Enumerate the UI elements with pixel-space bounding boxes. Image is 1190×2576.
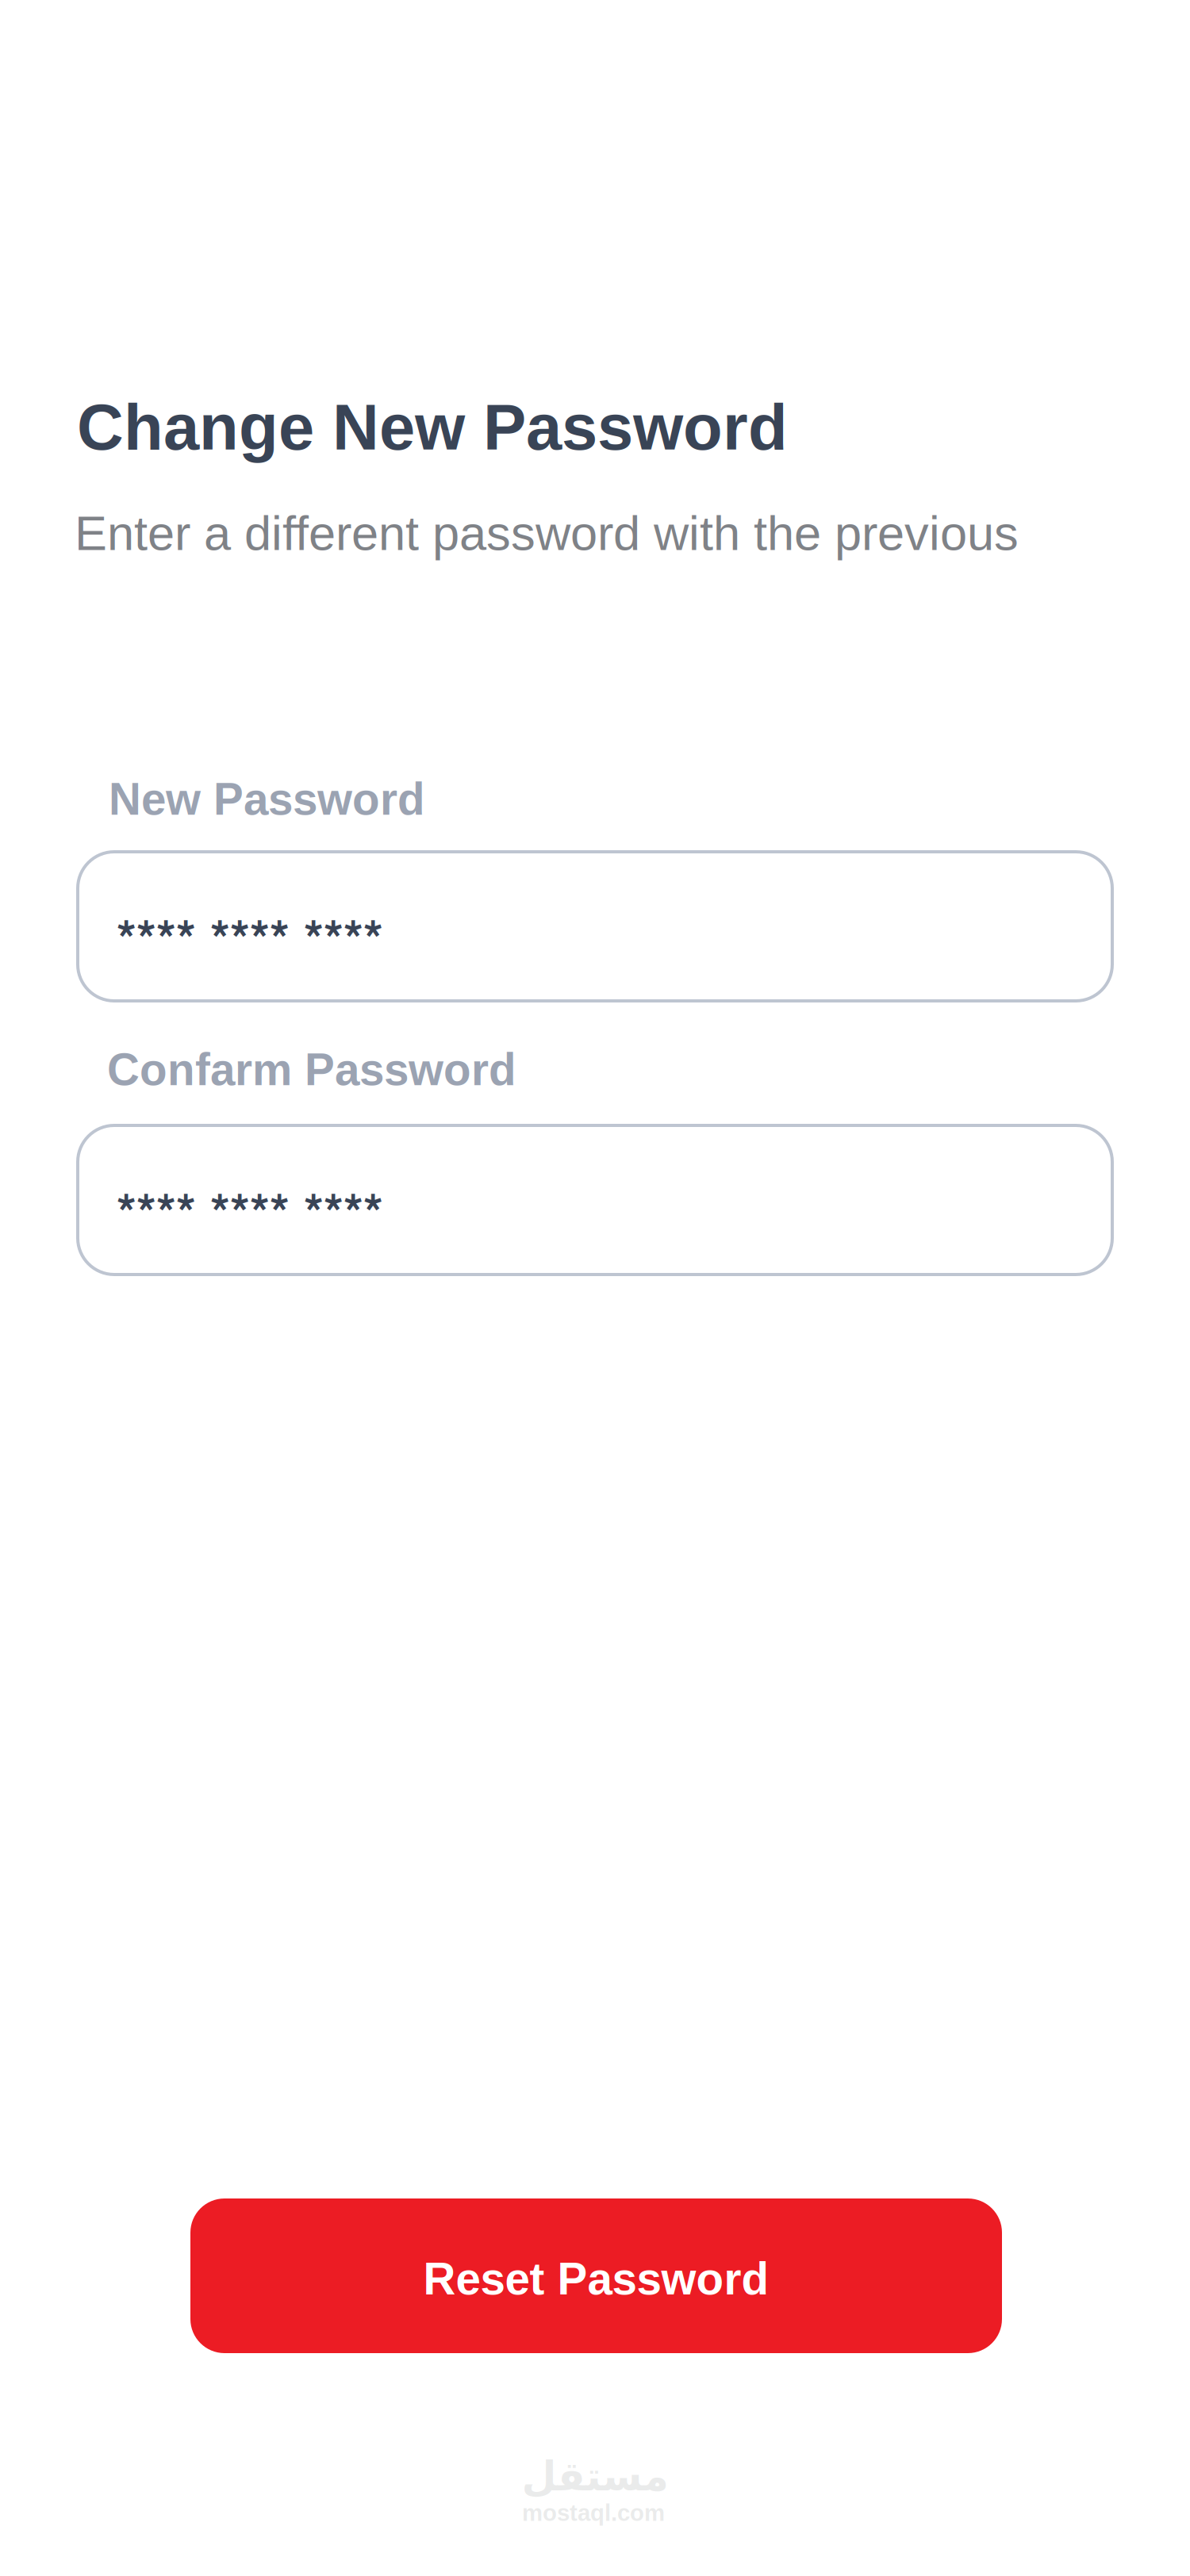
staticText: مستقل xyxy=(521,2453,668,2500)
staticText: mostaql.com xyxy=(522,2500,665,2526)
staticText: New Password xyxy=(109,774,425,824)
button[interactable]: Reset Password xyxy=(190,2198,1002,2353)
staticText: **** **** **** xyxy=(117,900,383,973)
staticText: Enter a different password with the prev… xyxy=(75,506,1019,560)
staticText: Change New Password xyxy=(77,391,788,463)
staticText: Confarm Password xyxy=(107,1045,516,1095)
staticText: Reset Password xyxy=(423,2254,769,2304)
button[interactable]: Confarm Password xyxy=(78,1125,1112,1275)
button[interactable]: New Password xyxy=(78,852,1112,1001)
staticText: **** **** **** xyxy=(117,1174,383,1247)
